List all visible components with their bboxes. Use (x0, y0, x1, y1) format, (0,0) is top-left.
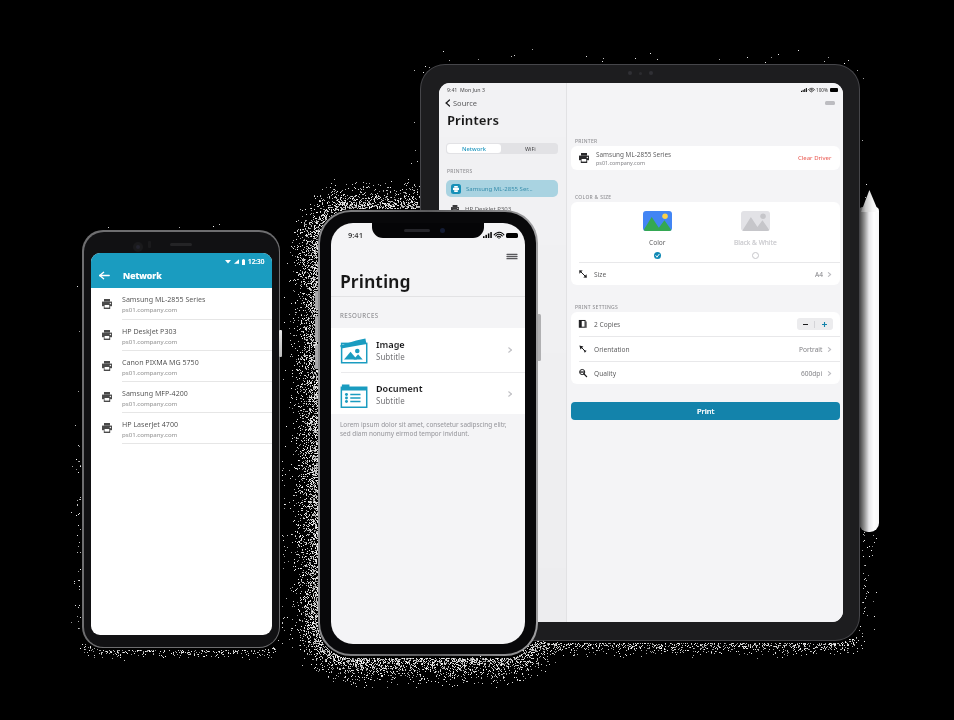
staticText: ps01.company.com (122, 399, 178, 407)
button[interactable]: HP LaserJet 4700 (91, 413, 272, 443)
staticText: Network (123, 270, 162, 282)
staticText: Clear Driver (798, 154, 832, 162)
staticText: Network (462, 145, 486, 153)
button[interactable]: Increase copies (815, 318, 833, 330)
staticText: Subtitle (376, 395, 405, 406)
staticText: Samsung ML-2855 Ser... (466, 185, 533, 193)
staticText: PRINTER (575, 138, 598, 145)
staticText: Samsung ML-2855 Series (122, 294, 206, 304)
staticText: 9:41 (348, 230, 363, 240)
staticText: ps01.company.com (596, 159, 645, 166)
button[interactable]: Samsung MFP-4200 (91, 382, 272, 412)
staticText: A4 (815, 270, 823, 279)
button[interactable]: Black & White (706, 202, 804, 262)
staticText: Canon PIXMA MG 5750 (122, 357, 199, 367)
staticText: HP DeskJet P303 (122, 326, 177, 336)
staticText: ps01.company.com (122, 368, 178, 376)
staticText: Document (376, 382, 423, 394)
staticText: Color (649, 238, 666, 247)
staticText: Quality (594, 369, 617, 378)
button[interactable]: Network (447, 144, 501, 153)
staticText: Printing (340, 269, 411, 293)
button[interactable]: Size (571, 263, 840, 285)
staticText: PRINT SETTINGS (575, 304, 618, 311)
button[interactable]: Samsung ML-2855 Series (91, 288, 272, 319)
staticText: 2 Copies (594, 320, 621, 329)
button[interactable]: Source (439, 96, 566, 110)
staticText: Lorem ipsum dolor sit amet, consetetur s… (340, 420, 507, 438)
staticText: ps01.company.com (122, 430, 178, 438)
button[interactable]: Print (571, 402, 840, 420)
button[interactable]: Samsung ML-2855 Series (571, 146, 840, 170)
button[interactable]: HP DeskJet P303 (451, 200, 566, 217)
staticText: Subtitle (376, 351, 405, 362)
staticText: 600dpi (801, 369, 823, 378)
button[interactable]: Image (331, 328, 525, 372)
staticText: Portrait (799, 345, 823, 354)
staticText: Samsung ML-2855 Series (596, 150, 672, 159)
staticText: ps01.company.com (122, 305, 178, 313)
staticText: 9:41 Mon Jun 3 (447, 86, 485, 93)
button[interactable]: Menu (505, 249, 519, 263)
staticText: HP DeskJet P303 (465, 205, 512, 213)
button[interactable]: Orientation (571, 337, 840, 361)
button[interactable]: HP DeskJet P303 (91, 320, 272, 350)
staticText: Image (376, 338, 405, 350)
staticText: WiFi (525, 145, 536, 152)
staticText: 12:30 (248, 257, 265, 266)
button[interactable]: Samsung ML-2855 Ser... (446, 180, 558, 197)
button[interactable]: Document (331, 373, 525, 414)
staticText: ps01.company.com (122, 337, 178, 345)
button[interactable]: Clear Driver (798, 154, 832, 162)
button[interactable]: Collapse sidebar (825, 101, 835, 105)
staticText: Size (594, 270, 607, 279)
staticText: Samsung MFP-4200 (122, 388, 188, 398)
staticText: 100% (816, 87, 828, 93)
staticText: Source (453, 98, 478, 108)
button[interactable]: Back (96, 267, 113, 284)
button[interactable]: WiFi (502, 143, 558, 154)
staticText: PRINTERS (447, 168, 473, 175)
button[interactable]: Decrease copies (797, 318, 814, 330)
staticText: Black & White (734, 238, 777, 247)
staticText: COLOR & SIZE (575, 194, 612, 201)
staticText: RESOURCES (340, 311, 379, 319)
staticText: Orientation (594, 345, 630, 354)
staticText: Printers (447, 111, 499, 129)
button[interactable]: Canon PIXMA MG 5750 (91, 351, 272, 381)
button[interactable]: Color (608, 202, 706, 262)
staticText: Print (697, 406, 715, 416)
staticText: HP LaserJet 4700 (122, 419, 178, 429)
button[interactable]: Quality (571, 362, 840, 384)
